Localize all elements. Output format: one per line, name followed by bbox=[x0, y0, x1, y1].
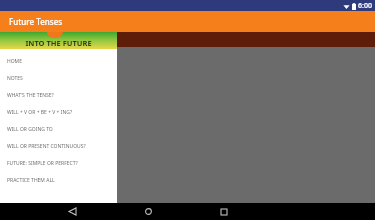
staticText: WILL + V OR + BE + V + ING? bbox=[7, 109, 73, 116]
button[interactable]: PRACTICE THEM ALL bbox=[0, 172, 117, 189]
staticText: WHAT'S THE TENSE? bbox=[7, 92, 54, 99]
button[interactable]: Back bbox=[61, 203, 83, 220]
button[interactable]: NOTES bbox=[0, 70, 117, 87]
button[interactable]: WILL + V OR + BE + V + ING? bbox=[0, 104, 117, 121]
staticText: FUTURE: SIMPLE OR PERFECT? bbox=[7, 160, 78, 167]
staticText: INTO THE FUTURE bbox=[25, 38, 92, 48]
button[interactable]: WILL OR PRESENT CONTINUOUS? bbox=[0, 138, 117, 155]
staticText: WILL OR GOING TO bbox=[7, 126, 53, 133]
button[interactable]: Home bbox=[137, 203, 159, 220]
staticText: WILL OR PRESENT CONTINUOUS? bbox=[7, 143, 86, 150]
staticText: Future Tenses bbox=[9, 16, 63, 27]
button[interactable]: Recent apps bbox=[213, 203, 235, 220]
staticText: NOTES bbox=[7, 75, 23, 82]
button[interactable]: FUTURE: SIMPLE OR PERFECT? bbox=[0, 155, 117, 172]
button[interactable]: HOME bbox=[0, 53, 117, 70]
button[interactable]: INTO THE FUTURE bbox=[0, 32, 117, 49]
staticText: PRACTICE THEM ALL bbox=[7, 177, 55, 184]
button[interactable]: WHAT'S THE TENSE? bbox=[0, 87, 117, 104]
staticText: HOME bbox=[7, 58, 22, 65]
staticText: 6:00 bbox=[358, 1, 372, 11]
button[interactable]: WILL OR GOING TO bbox=[0, 121, 117, 138]
